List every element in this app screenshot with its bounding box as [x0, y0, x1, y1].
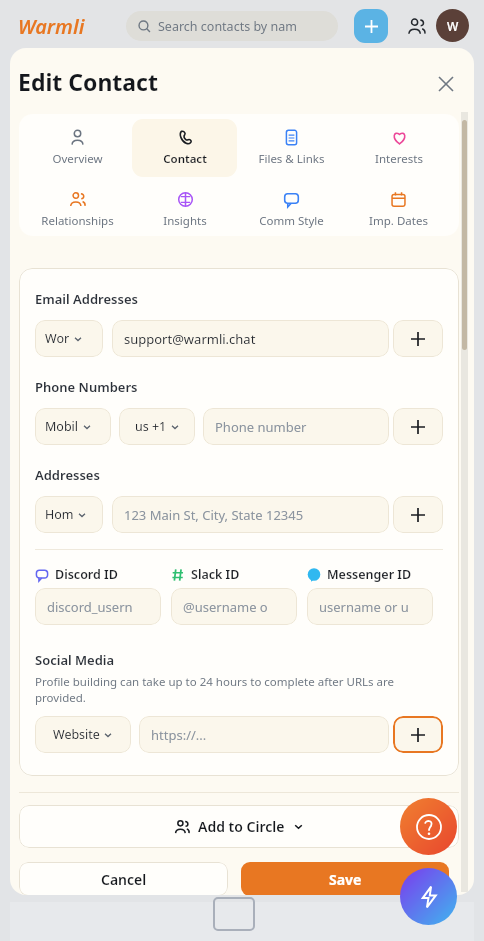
button[interactable]: Relationships [25, 181, 130, 236]
staticText: W [447, 18, 459, 34]
button[interactable]: https://... [139, 716, 389, 753]
staticText: https://... [151, 726, 207, 744]
button[interactable]: us +1 [119, 408, 195, 445]
staticText: Addresses [35, 466, 100, 484]
staticText: Wor [45, 330, 70, 347]
button[interactable]: discord_usern [35, 588, 161, 625]
button[interactable]: Add entry [393, 320, 443, 357]
staticText: @username o [183, 598, 268, 616]
button[interactable]: Close [430, 68, 462, 100]
button[interactable]: @username o [171, 588, 297, 625]
staticText: Discord ID [55, 566, 118, 583]
staticText: Imp. Dates [369, 213, 428, 229]
staticText: Email Addresses [35, 290, 138, 308]
staticText: Interests [375, 151, 423, 167]
staticText: Phone Numbers [35, 378, 138, 396]
staticText: Relationships [41, 213, 114, 229]
button[interactable]: Files & Links [239, 119, 344, 177]
button[interactable]: Imp. Dates [346, 181, 451, 236]
button[interactable]: Website [35, 716, 131, 753]
staticText: Hom [45, 506, 74, 523]
button[interactable]: Save [241, 862, 449, 895]
button[interactable]: Add to Circle [19, 805, 459, 848]
button[interactable]: Add entry [393, 408, 443, 445]
button[interactable]: Phone number [203, 408, 389, 445]
staticText: Search contacts by nam [158, 18, 297, 35]
staticText: Overview [52, 151, 103, 167]
staticText: us +1 [135, 418, 167, 435]
button[interactable]: Search contacts by nam [126, 11, 338, 41]
staticText: Website [53, 726, 100, 743]
button[interactable]: Contact [132, 119, 237, 177]
staticText: discord_usern [47, 598, 133, 616]
button[interactable]: 123 Main St, City, State 12345 [112, 496, 389, 533]
staticText: Profile building can take up to 24 hours… [35, 674, 395, 705]
staticText: Cancel [101, 870, 147, 889]
button[interactable]: Add entry [393, 496, 443, 533]
button[interactable]: Hom [35, 496, 103, 533]
staticText: 123 Main St, City, State 12345 [124, 506, 304, 524]
button[interactable]: Add [354, 9, 388, 43]
button[interactable]: Mobil [35, 408, 111, 445]
staticText: username or u [319, 598, 409, 616]
staticText: Edit Contact [18, 66, 158, 97]
staticText: Add to Circle [198, 817, 285, 836]
button[interactable]: Overview [25, 119, 130, 177]
staticText: support@warmli.chat [124, 330, 256, 348]
button[interactable]: support@warmli.chat [112, 320, 389, 357]
button[interactable]: Comm Style [239, 181, 344, 236]
staticText: Files & Links [258, 151, 325, 167]
staticText: Comm Style [259, 213, 324, 229]
button[interactable]: Quick actions [400, 868, 457, 925]
button[interactable]: Cancel [19, 862, 228, 895]
button[interactable]: Add entry [393, 716, 443, 753]
staticText: Slack ID [191, 566, 240, 583]
button[interactable]: Interests [346, 119, 451, 177]
staticText: Mobil [45, 418, 79, 435]
button[interactable]: Wor [35, 320, 103, 357]
button[interactable]: username or u [307, 588, 433, 625]
staticText: Contact [163, 151, 207, 167]
staticText: Social Media [35, 651, 115, 669]
staticText: Warmli [18, 13, 85, 40]
button[interactable]: Insights [132, 181, 237, 236]
staticText: Messenger ID [327, 566, 412, 583]
button[interactable]: Profile [436, 9, 469, 42]
staticText: Save [329, 870, 362, 889]
staticText: Insights [163, 213, 207, 229]
button[interactable]: Help [400, 798, 457, 855]
staticText: Phone number [215, 418, 307, 436]
button[interactable]: Contacts [400, 10, 432, 42]
